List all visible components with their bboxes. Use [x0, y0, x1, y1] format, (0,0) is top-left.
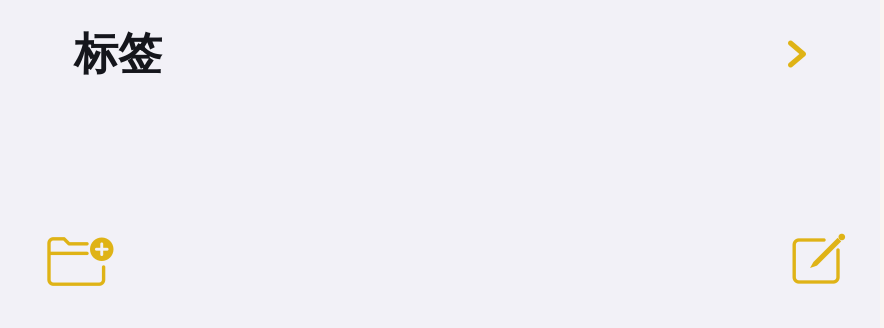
- button[interactable]: Expand: [775, 32, 819, 76]
- button[interactable]: New Folder: [47, 234, 115, 288]
- staticText: 标签: [74, 27, 162, 81]
- button[interactable]: New Note: [791, 231, 849, 288]
